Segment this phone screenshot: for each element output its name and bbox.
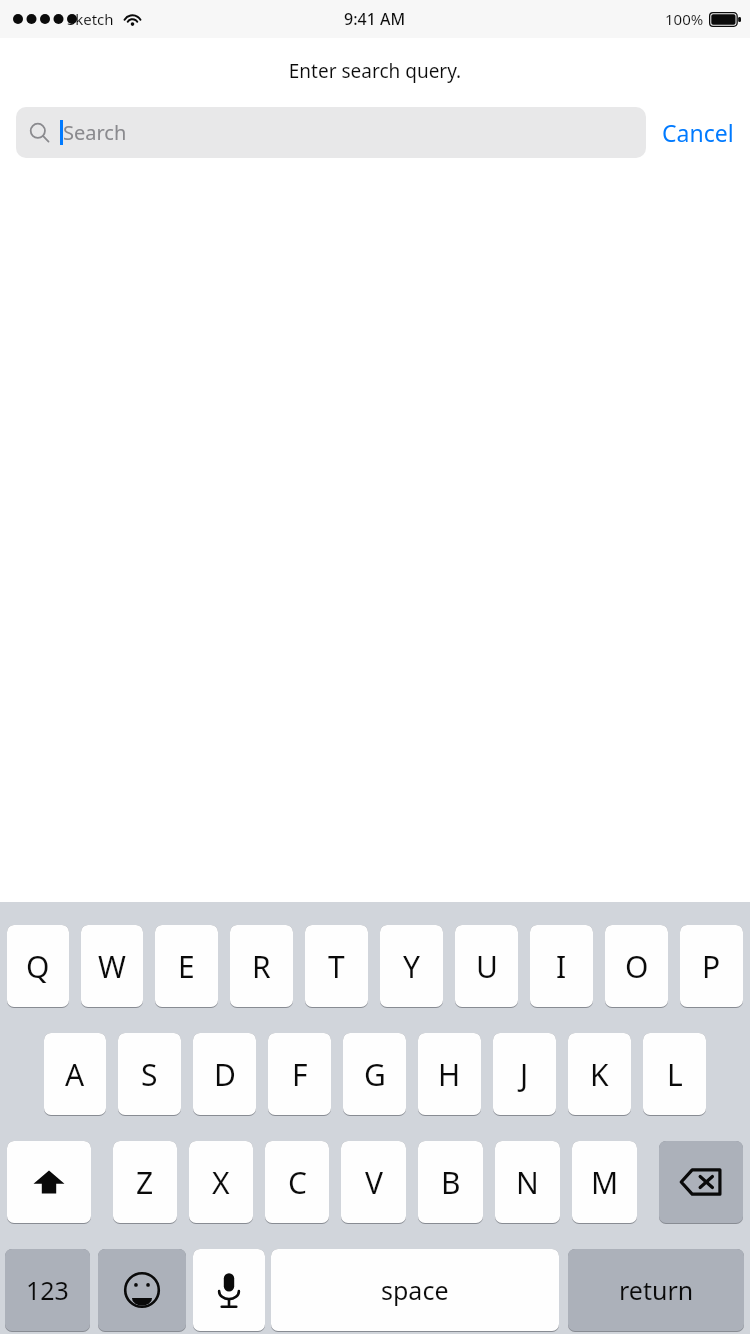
staticText: 9:41 AM (344, 8, 406, 30)
button[interactable]: T (305, 925, 368, 1010)
button[interactable]: M (572, 1141, 637, 1226)
button[interactable]: D (193, 1033, 256, 1118)
staticText: Q (26, 946, 50, 987)
staticText: Sketch (67, 9, 114, 29)
staticText: W (98, 946, 126, 987)
button[interactable]: Z (113, 1141, 177, 1226)
staticText: Z (136, 1162, 154, 1203)
staticText: B (441, 1162, 461, 1203)
button[interactable]: Search (16, 107, 646, 158)
staticText: N (516, 1162, 539, 1203)
staticText: return (619, 1273, 694, 1307)
staticText: L (667, 1054, 683, 1095)
button[interactable]: H (418, 1033, 481, 1118)
staticText: Y (403, 946, 420, 987)
staticText: I (556, 946, 567, 987)
staticText: O (625, 946, 649, 987)
staticText: D (214, 1054, 236, 1095)
button[interactable]: Emoji (98, 1249, 186, 1334)
button[interactable]: O (605, 925, 668, 1010)
button[interactable]: Cancel (646, 111, 734, 154)
button[interactable]: Backspace (659, 1141, 743, 1226)
button[interactable]: S (118, 1033, 181, 1118)
staticText: M (591, 1162, 619, 1203)
button[interactable]: W (81, 925, 143, 1010)
button[interactable]: X (189, 1141, 253, 1226)
staticText: F (292, 1054, 308, 1095)
button[interactable]: Q (7, 925, 69, 1010)
button[interactable]: L (643, 1033, 706, 1118)
staticText: R (252, 946, 271, 987)
staticText: H (438, 1054, 461, 1095)
button[interactable]: space (271, 1249, 559, 1334)
button[interactable]: U (455, 925, 518, 1010)
button[interactable]: J (493, 1033, 556, 1118)
button[interactable]: Dictation (193, 1249, 265, 1334)
button[interactable]: A (44, 1033, 106, 1118)
staticText: Cancel (662, 117, 734, 148)
button[interactable]: K (568, 1033, 631, 1118)
staticText: V (365, 1162, 383, 1203)
staticText: Enter search query. (0, 58, 750, 84)
button[interactable]: 123 (5, 1249, 90, 1334)
staticText: C (288, 1162, 307, 1203)
staticText: Search (63, 119, 127, 146)
staticText: S (141, 1054, 158, 1095)
staticText: T (328, 946, 345, 987)
staticText: space (381, 1273, 449, 1307)
staticText: A (65, 1054, 85, 1095)
button[interactable]: P (680, 925, 743, 1010)
button[interactable]: R (230, 925, 293, 1010)
button[interactable]: B (418, 1141, 483, 1226)
staticText: J (520, 1054, 529, 1095)
staticText: P (702, 946, 721, 987)
button[interactable]: Shift (7, 1141, 91, 1226)
staticText: 123 (26, 1273, 69, 1307)
button[interactable]: F (268, 1033, 331, 1118)
staticText: 100% (665, 9, 704, 29)
button[interactable]: I (530, 925, 593, 1010)
button[interactable]: N (495, 1141, 560, 1226)
staticText: G (364, 1054, 386, 1095)
staticText: K (590, 1054, 609, 1095)
button[interactable]: C (265, 1141, 329, 1226)
button[interactable]: E (155, 925, 218, 1010)
staticText: E (178, 946, 195, 987)
staticText: U (476, 946, 498, 987)
button[interactable]: Y (380, 925, 443, 1010)
button[interactable]: V (341, 1141, 406, 1226)
staticText: X (212, 1162, 230, 1203)
button[interactable]: G (343, 1033, 406, 1118)
button[interactable]: return (568, 1249, 744, 1334)
